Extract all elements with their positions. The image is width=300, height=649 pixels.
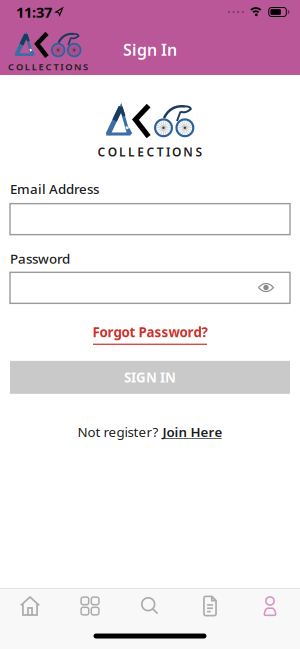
staticText: L	[119, 144, 126, 160]
button[interactable]: SIGN IN	[10, 361, 290, 394]
staticText: L	[32, 60, 37, 73]
staticText: C	[146, 144, 154, 160]
staticText: C	[8, 60, 14, 73]
button[interactable]: Join Here	[162, 423, 222, 441]
staticText: Forgot Password?	[92, 323, 207, 341]
staticText: C	[97, 144, 105, 160]
button[interactable]: Home	[0, 589, 60, 623]
button[interactable]: Email Address	[10, 204, 290, 235]
staticText: E	[137, 144, 144, 160]
staticText: I	[60, 60, 63, 73]
staticText: O	[172, 144, 181, 160]
button[interactable]: Categories	[60, 589, 120, 623]
staticText: N	[183, 144, 193, 160]
button[interactable]: Show password	[258, 283, 290, 293]
staticText: E	[39, 60, 44, 73]
button[interactable]: Orders	[180, 589, 240, 623]
staticText: S	[83, 60, 88, 73]
staticText: I	[166, 144, 170, 160]
button[interactable]: Search	[120, 589, 180, 623]
staticText: O	[65, 60, 72, 73]
staticText: O	[16, 60, 23, 73]
staticText: Sign In	[123, 39, 177, 60]
staticText: SIGN IN	[124, 368, 176, 386]
staticText: T	[157, 144, 164, 160]
button[interactable]: Password	[10, 272, 290, 303]
staticText: 11:37	[16, 2, 52, 22]
staticText: C	[45, 60, 51, 73]
staticText: L	[128, 144, 135, 160]
staticText: Password	[10, 250, 70, 267]
staticText: O	[108, 144, 117, 160]
staticText: L	[25, 60, 30, 73]
staticText: Not register?	[77, 423, 158, 441]
staticText: N	[74, 60, 81, 73]
staticText: Join Here	[162, 423, 222, 441]
button[interactable]: Account	[240, 589, 300, 623]
staticText: Email Address	[10, 180, 99, 198]
staticText: S	[195, 144, 202, 160]
staticText: T	[53, 60, 58, 73]
button[interactable]: Forgot Password?	[92, 323, 207, 345]
